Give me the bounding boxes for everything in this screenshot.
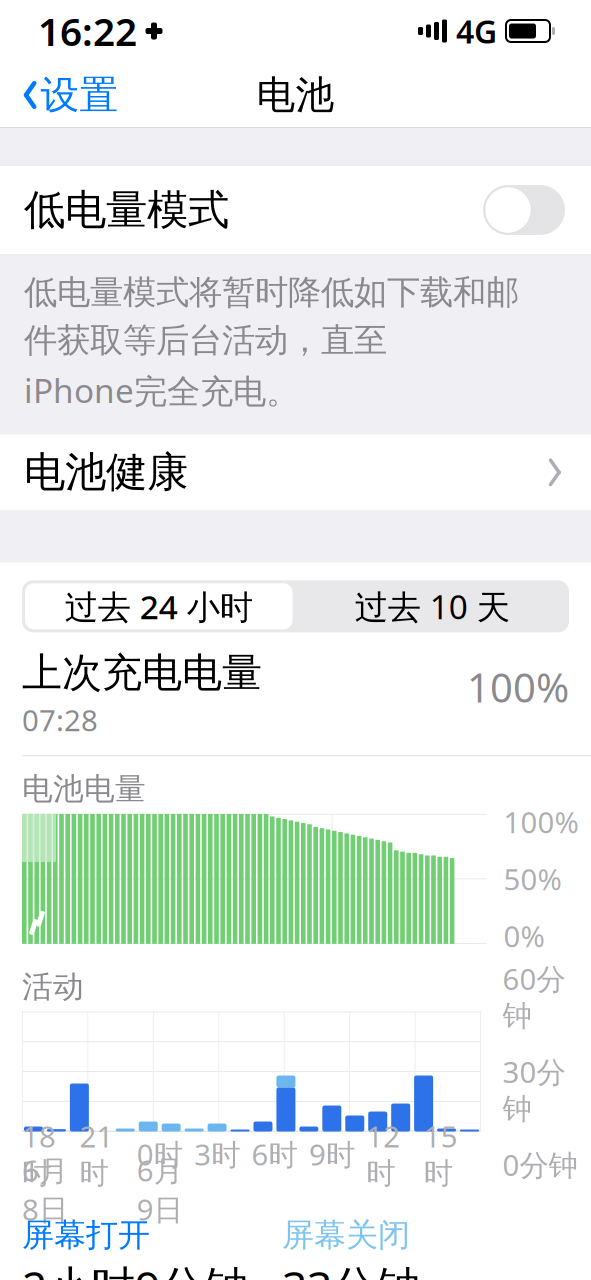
staticText: 低电量模式将暂时降低如下载和邮件获取等后台活动，直至 iPhone完全充电。 — [24, 272, 519, 412]
staticText: 60分钟 — [502, 959, 565, 1034]
staticText: 50% — [503, 859, 561, 898]
staticText: 21时 — [79, 1117, 113, 1192]
staticText: 2小时9分钟 — [22, 1257, 248, 1280]
staticText: 18时 — [22, 1117, 56, 1192]
staticText: 16:22 — [38, 5, 137, 57]
staticText: 6月8日 — [22, 1151, 68, 1228]
staticText: 100% — [467, 660, 569, 713]
staticText: 12时 — [366, 1117, 400, 1192]
staticText: 设置 — [41, 71, 119, 119]
staticText: 0时 — [137, 1135, 183, 1174]
staticText: 33分钟 — [282, 1257, 420, 1280]
staticText: 屏幕关闭 — [282, 1215, 410, 1255]
staticText: 15时 — [424, 1117, 458, 1192]
staticText: 6时 — [251, 1135, 297, 1174]
staticText: 100% — [503, 802, 578, 841]
staticText: 屏幕打开 — [22, 1215, 150, 1255]
staticText: 0% — [503, 916, 544, 955]
staticText: 3时 — [194, 1135, 240, 1174]
staticText: 过去 24 小时 — [65, 584, 253, 628]
staticText: 30分钟 — [502, 1052, 565, 1127]
staticText: 9时 — [309, 1135, 355, 1174]
staticText: 活动 — [22, 968, 84, 1006]
staticText: 4G — [456, 10, 497, 52]
staticText: 电池健康 — [24, 447, 188, 498]
staticText: 0分钟 — [502, 1145, 577, 1184]
staticText: 上次充电电量 — [22, 648, 262, 697]
button[interactable]: 过去 10 天 — [295, 580, 569, 632]
staticText: 过去 10 天 — [355, 584, 510, 628]
staticText: 6月9日 — [137, 1151, 183, 1228]
staticText: 电池电量 — [22, 770, 146, 808]
button[interactable]: 低电量模式 — [0, 166, 591, 254]
button[interactable]: 电池健康 — [0, 434, 591, 510]
button[interactable]: 设置 — [0, 63, 119, 127]
staticText: 电池 — [256, 71, 334, 119]
button[interactable]: 过去 24 小时 — [22, 580, 295, 632]
staticText: 低电量模式 — [24, 185, 229, 235]
staticText: 07:28 — [22, 700, 98, 739]
